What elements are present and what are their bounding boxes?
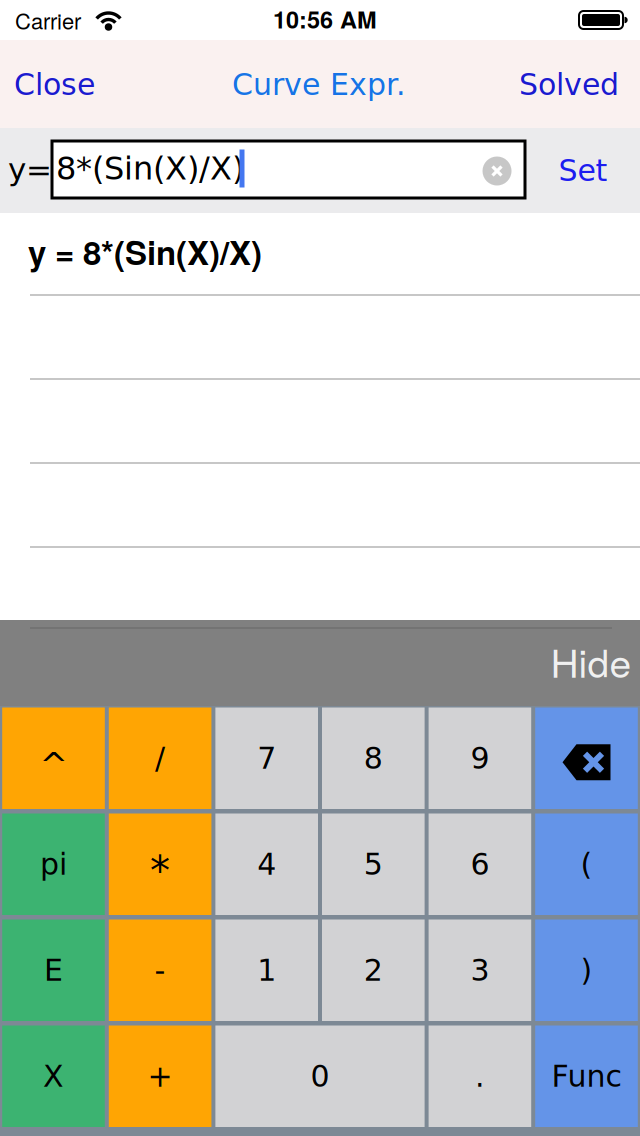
staticText: 4 <box>257 847 276 882</box>
staticText: Solved <box>519 67 619 102</box>
button[interactable]: Func <box>535 1025 638 1127</box>
staticText: ) <box>580 953 592 988</box>
staticText: 9 <box>470 741 489 776</box>
staticText: ^ <box>39 745 67 785</box>
staticText: Curve Expr. <box>232 67 406 102</box>
staticText: / <box>155 741 165 776</box>
button[interactable]: 8 <box>322 707 425 809</box>
staticText: 1 <box>257 953 276 988</box>
button[interactable]: 1 <box>215 919 318 1021</box>
staticText: 5 <box>364 847 383 882</box>
staticText: 10:56 AM <box>273 2 377 36</box>
button[interactable]: 0 <box>215 1025 425 1127</box>
staticText: Func <box>551 1059 621 1094</box>
staticText: Close <box>14 67 95 102</box>
button[interactable]: 6 <box>429 813 531 915</box>
staticText: 8*(Sin(X)/X) <box>56 150 244 187</box>
button[interactable]: * <box>109 813 211 915</box>
button[interactable]: 9 <box>429 707 531 809</box>
staticText: y= <box>8 151 52 188</box>
staticText: Hide <box>550 633 631 689</box>
button[interactable]: pi <box>2 813 105 915</box>
button[interactable]: - <box>109 919 211 1021</box>
button[interactable]: Close <box>2 53 107 115</box>
button[interactable]: Set <box>538 139 628 201</box>
button[interactable]: y = 8*(Sin(X)/X) <box>0 213 640 294</box>
staticText: 7 <box>257 741 276 776</box>
staticText: Carrier <box>15 4 81 36</box>
staticText: 8 <box>364 741 383 776</box>
button[interactable]: ^ <box>2 707 105 809</box>
staticText: E <box>44 953 63 988</box>
button[interactable]: 4 <box>215 813 318 915</box>
staticText: 2 <box>364 953 383 988</box>
staticText: pi <box>40 847 67 882</box>
staticText: + <box>148 1059 173 1094</box>
button[interactable]: Hide <box>543 621 639 701</box>
button[interactable]: 7 <box>215 707 318 809</box>
staticText: 0 <box>310 1059 329 1094</box>
button[interactable]: 5 <box>322 813 425 915</box>
staticText: 3 <box>470 953 489 988</box>
staticText: 6 <box>470 847 489 882</box>
button[interactable]: X <box>2 1025 105 1127</box>
button[interactable]: Delete <box>535 707 638 809</box>
button[interactable]: / <box>109 707 211 809</box>
button[interactable]: Solved <box>509 53 629 115</box>
button[interactable]: ( <box>535 813 638 915</box>
staticText: X <box>43 1059 64 1094</box>
staticText: y = 8*(Sin(X)/X) <box>28 228 262 275</box>
staticText: . <box>475 1059 485 1094</box>
button[interactable]: . <box>429 1025 531 1127</box>
button[interactable]: Clear text <box>482 156 511 185</box>
staticText: - <box>155 953 166 988</box>
button[interactable]: 3 <box>429 919 531 1021</box>
staticText: ( <box>580 847 592 882</box>
staticText: Set <box>558 153 607 188</box>
button[interactable]: E <box>2 919 105 1021</box>
button[interactable]: 2 <box>322 919 425 1021</box>
button[interactable]: ) <box>535 919 638 1021</box>
staticText: * <box>150 848 170 895</box>
button[interactable]: + <box>109 1025 211 1127</box>
